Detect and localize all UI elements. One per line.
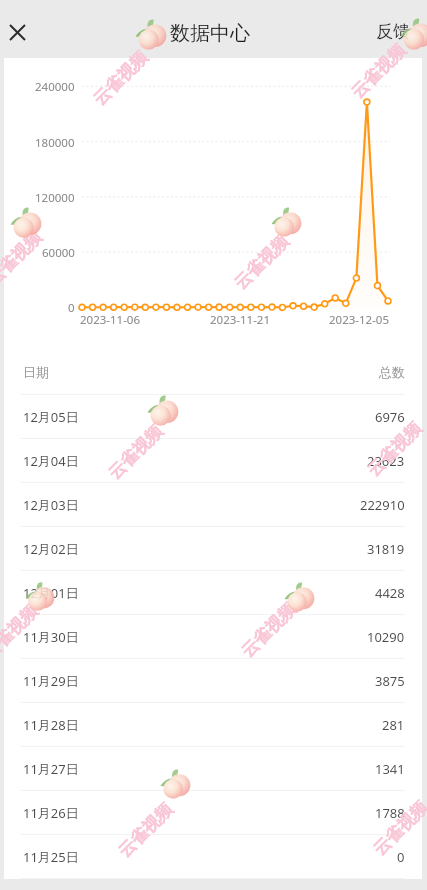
staticText: 281 (382, 716, 405, 734)
staticText: 3875 (375, 672, 405, 690)
staticText: 总数 (379, 364, 405, 380)
staticText: 4428 (375, 584, 405, 602)
staticText: 11月30日 (23, 628, 79, 646)
staticText: 云雀视频 (363, 418, 426, 481)
staticText: 0 (397, 848, 405, 866)
staticText: 数据中心 (170, 21, 250, 46)
staticText: 222910 (360, 496, 405, 514)
staticText: 11月29日 (23, 672, 79, 690)
staticText: 云雀视频 (0, 601, 42, 664)
button[interactable]: 12月03日 (4, 483, 422, 526)
staticText: 云雀视频 (369, 797, 427, 860)
button[interactable]: 12月04日 (4, 439, 422, 482)
staticText: 10290 (367, 628, 405, 646)
button[interactable]: Close (0, 15, 35, 50)
button[interactable]: 11月29日 (4, 659, 422, 702)
staticText: 云雀视频 (104, 421, 167, 484)
staticText: 2023-11-21 (210, 312, 271, 328)
staticText: 60000 (42, 245, 75, 261)
staticText: 云雀视频 (237, 599, 300, 662)
button[interactable]: 11月26日 (4, 791, 422, 834)
staticText: 2023-12-05 (329, 312, 390, 328)
button[interactable]: 12月05日 (4, 395, 422, 438)
staticText: 1341 (375, 760, 405, 778)
staticText: 12月04日 (23, 452, 79, 470)
staticText: 31819 (367, 540, 405, 558)
staticText: 6976 (375, 408, 405, 426)
staticText: 12月05日 (23, 408, 79, 426)
button[interactable]: 11月28日 (4, 703, 422, 746)
staticText: 2023-11-06 (80, 312, 141, 328)
staticText: 0 (68, 300, 75, 316)
staticText: 11月25日 (23, 848, 79, 866)
button[interactable]: 反馈 (360, 11, 427, 52)
staticText: 23623 (367, 452, 405, 470)
staticText: 180000 (35, 135, 75, 151)
staticText: 云雀视频 (89, 47, 152, 110)
button[interactable]: 11月27日 (4, 747, 422, 790)
staticText: 11月26日 (23, 804, 79, 822)
staticText: 12月03日 (23, 496, 79, 514)
staticText: 12月02日 (23, 540, 79, 558)
staticText: 云雀视频 (114, 799, 177, 862)
button[interactable]: 12月01日 (4, 571, 422, 614)
staticText: 云雀视频 (230, 231, 293, 294)
button[interactable]: 11月30日 (4, 615, 422, 658)
staticText: 日期 (23, 364, 49, 380)
staticText: 11月28日 (23, 716, 79, 734)
staticText: 240000 (35, 79, 75, 95)
staticText: 11月27日 (23, 760, 79, 778)
button[interactable]: 11月25日 (4, 835, 422, 878)
staticText: 反馈 (376, 21, 410, 42)
staticText: 120000 (35, 190, 75, 206)
button[interactable]: 12月02日 (4, 527, 422, 570)
staticText: 12月01日 (23, 584, 79, 602)
staticText: 1788 (375, 804, 405, 822)
staticText: 云雀视频 (347, 40, 410, 103)
staticText: 云雀视频 (0, 227, 46, 290)
